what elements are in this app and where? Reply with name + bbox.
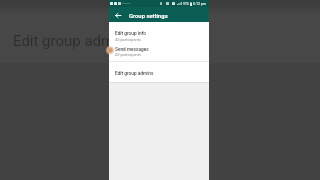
button[interactable]: Edit group info <box>109 26 209 43</box>
staticText: All participants <box>115 37 142 42</box>
staticText: All participants <box>115 52 142 57</box>
staticText: Edit group admins <box>115 71 154 77</box>
button[interactable]: Edit group admins <box>109 66 209 86</box>
staticText: Send messages <box>115 47 149 53</box>
button[interactable]: Back <box>112 7 123 22</box>
staticText: VTE <box>183 2 189 6</box>
staticText: Edit group adm <box>13 32 115 50</box>
button[interactable]: Send messages <box>109 42 209 59</box>
staticText: 5:12 pm <box>193 2 207 6</box>
staticText: Edit group info <box>115 31 147 37</box>
staticText: Group settings <box>129 13 168 20</box>
